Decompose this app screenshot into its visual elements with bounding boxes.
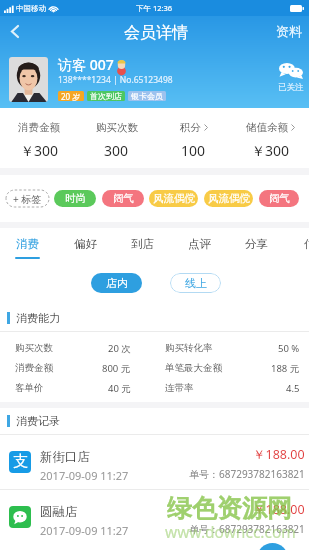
- button[interactable]: 消费金额: [0, 117, 78, 160]
- staticText: 消费记录: [16, 414, 60, 428]
- staticText: 信息: [304, 237, 309, 251]
- staticText: 188 元: [271, 362, 300, 375]
- staticText: 储值余额: [246, 121, 288, 134]
- staticText: 2017-09-09 11:27: [40, 523, 129, 538]
- staticText: 偏好: [74, 237, 97, 251]
- staticText: ￥300: [251, 141, 290, 160]
- button[interactable]: 风流偶傥: [149, 190, 198, 207]
- staticText: www.downcc.com: [165, 521, 296, 542]
- staticText: 消费: [16, 237, 39, 251]
- staticText: 单号：687293782163821: [189, 467, 305, 481]
- staticText: 绿色资源网: [167, 493, 292, 524]
- staticText: 阔气: [113, 192, 134, 205]
- staticText: 2017-09-09 11:27: [40, 468, 129, 483]
- button[interactable]: 风流偶傥: [204, 190, 253, 207]
- button[interactable]: 储值余额: [232, 117, 309, 160]
- staticText: ￥300: [20, 141, 59, 160]
- staticText: + 标签: [13, 192, 42, 206]
- staticText: 银卡会员: [131, 91, 163, 101]
- button[interactable]: 到店: [114, 228, 170, 259]
- staticText: 20 岁: [61, 91, 81, 101]
- staticText: 访客 007: [58, 55, 114, 74]
- staticText: ￥188.00: [253, 501, 305, 518]
- button[interactable]: + 标签: [6, 190, 49, 207]
- staticText: 购买次数: [15, 342, 53, 354]
- button[interactable]: 店内: [91, 273, 142, 293]
- staticText: 点评: [188, 237, 211, 251]
- staticText: 中国移动: [16, 4, 46, 13]
- staticText: 300: [104, 141, 129, 160]
- button[interactable]: 阔气: [102, 190, 144, 207]
- staticText: 连带率: [165, 382, 194, 394]
- staticText: 已关注: [278, 82, 304, 93]
- staticText: 线上: [185, 276, 207, 290]
- staticText: ￥188.00: [253, 446, 305, 463]
- button[interactable]: 圆融店: [0, 490, 309, 544]
- staticText: 客单价: [15, 382, 44, 394]
- staticText: 店内: [106, 276, 128, 290]
- button[interactable]: 支: [0, 435, 309, 489]
- staticText: 购买转化率: [165, 342, 213, 354]
- staticText: 积分: [180, 121, 201, 134]
- button[interactable]: 时尚: [54, 190, 96, 207]
- staticText: 资料: [276, 23, 302, 39]
- staticText: 阔气: [269, 192, 290, 205]
- staticText: 100: [181, 141, 206, 160]
- staticText: 分享: [245, 237, 268, 251]
- staticText: 风流偶傥: [153, 192, 195, 205]
- staticText: 40 元: [108, 382, 131, 395]
- staticText: 消费金额: [15, 362, 53, 374]
- staticText: 800 元: [102, 362, 131, 375]
- button[interactable]: 分享: [228, 228, 284, 259]
- staticText: 消费金额: [18, 121, 60, 134]
- staticText: 时尚: [65, 192, 86, 205]
- button[interactable]: 积分: [155, 117, 232, 160]
- button[interactable]: 资料: [276, 16, 309, 46]
- staticText: 单笔最大金额: [165, 362, 222, 374]
- button[interactable]: 线上: [170, 273, 221, 293]
- button[interactable]: 偏好: [57, 228, 113, 259]
- staticText: 会员详情: [124, 23, 188, 43]
- button[interactable]: 返回: [0, 16, 30, 46]
- button[interactable]: 消费: [0, 228, 55, 259]
- staticText: 20 次: [108, 342, 131, 355]
- button[interactable]: 购买次数: [78, 117, 155, 160]
- staticText: 新街口店: [40, 449, 90, 465]
- staticText: 首次到店: [90, 91, 122, 101]
- staticText: 4.5: [286, 382, 300, 395]
- staticText: 购买次数: [96, 121, 138, 134]
- staticText: 支: [13, 452, 28, 471]
- staticText: 下午 12:36: [136, 3, 173, 13]
- staticText: 消费能力: [16, 311, 60, 325]
- button[interactable]: 微信已关注: [277, 63, 305, 93]
- button[interactable]: 阔气: [259, 190, 299, 207]
- staticText: 到店: [131, 237, 154, 251]
- staticText: 50 %: [278, 342, 300, 355]
- staticText: 单号：687293782163821: [189, 522, 305, 536]
- button[interactable]: 信息: [304, 228, 309, 259]
- button[interactable]: 点评: [171, 228, 227, 259]
- staticText: 圆融店: [40, 504, 78, 520]
- staticText: 风流偶傥: [208, 192, 250, 205]
- button[interactable]: 添加: [257, 543, 288, 550]
- staticText: 138****1234 | No.65123498: [58, 74, 173, 86]
